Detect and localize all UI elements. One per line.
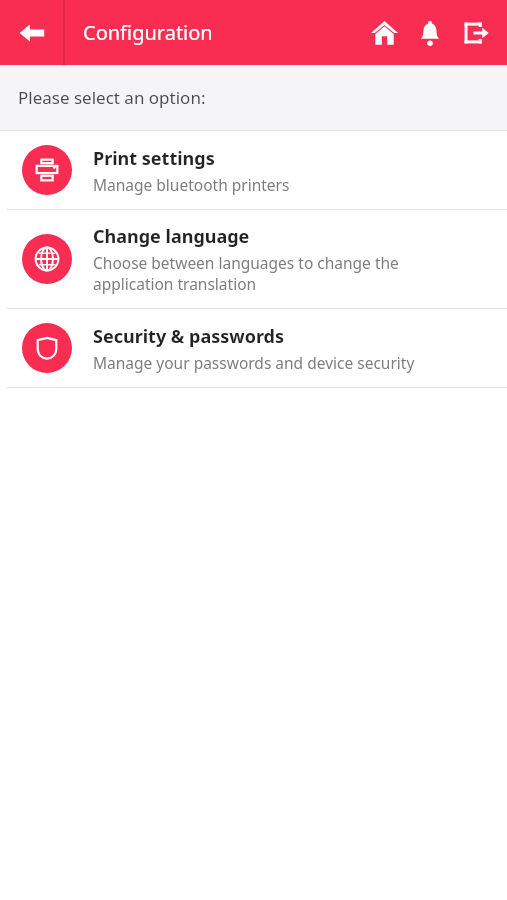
button[interactable]: Notifications	[407, 0, 453, 65]
button[interactable]: Change language	[0, 210, 507, 308]
button[interactable]: Print settings	[0, 131, 507, 209]
staticText: Manage your passwords and device securit…	[93, 352, 415, 373]
staticText: Change language	[93, 224, 250, 249]
staticText: Manage bluetooth printers	[93, 174, 290, 195]
button[interactable]: Security & passwords	[0, 309, 507, 387]
staticText: Configuration	[83, 19, 213, 46]
staticText: application translation	[93, 273, 257, 294]
staticText: Security & passwords	[93, 324, 285, 349]
staticText: Choose between languages to change the	[93, 252, 399, 273]
staticText: Print settings	[93, 146, 215, 171]
button[interactable]: Home	[361, 0, 407, 65]
button[interactable]: Back	[0, 0, 63, 65]
button[interactable]: Log out	[453, 0, 499, 65]
staticText: Please select an option:	[18, 86, 206, 109]
